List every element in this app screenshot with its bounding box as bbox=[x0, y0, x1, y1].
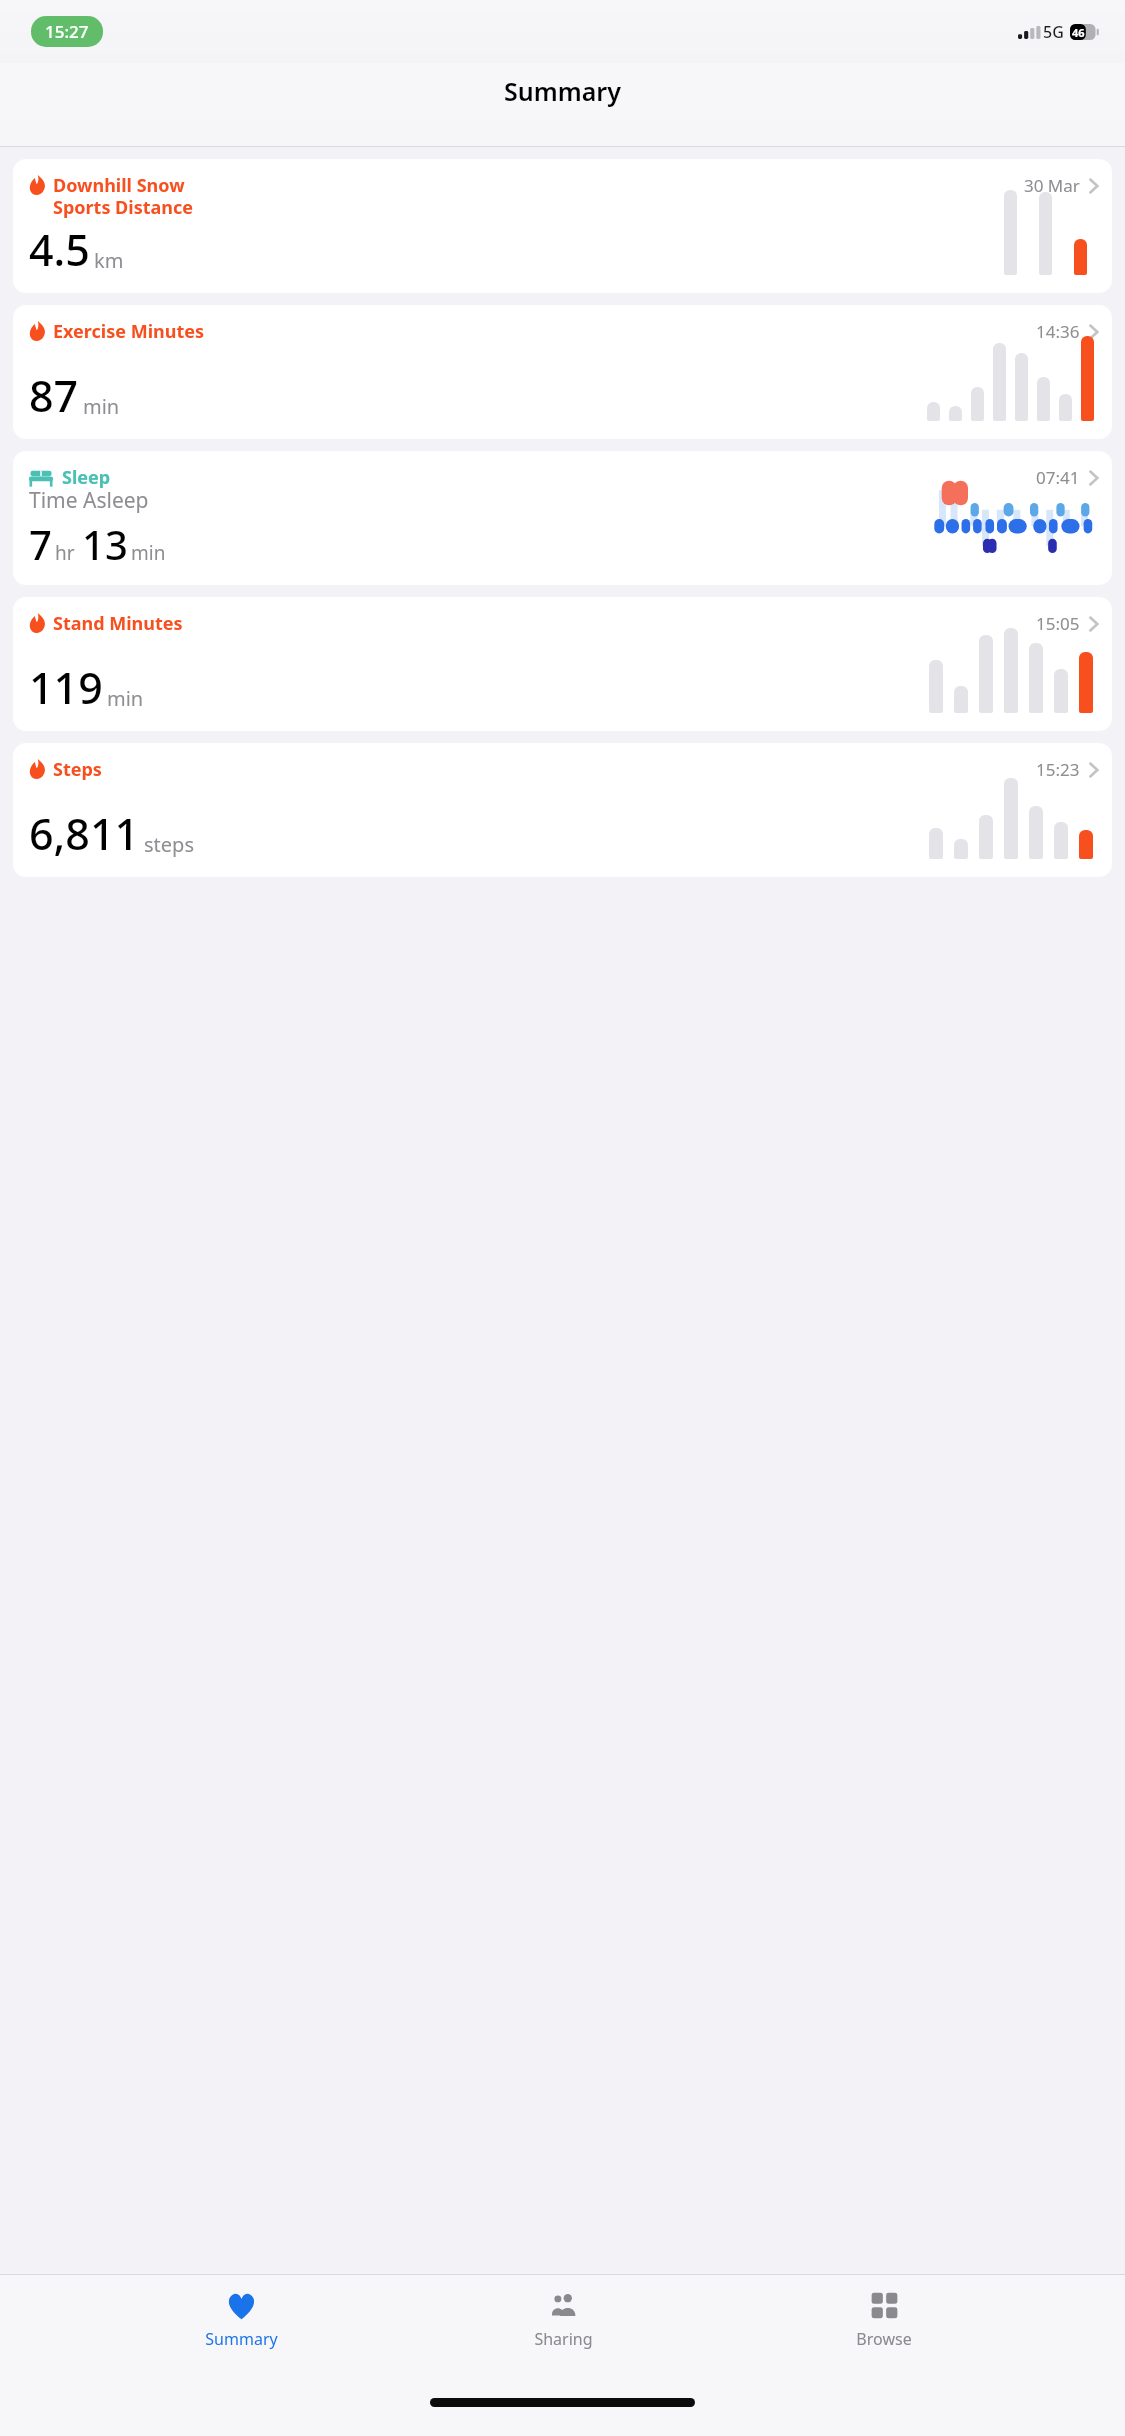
button[interactable]: Stand Minutes bbox=[13, 597, 1112, 731]
staticText: 46 bbox=[1072, 25, 1085, 40]
button[interactable]: Sleep bbox=[13, 451, 1112, 585]
button[interactable]: Summary bbox=[161, 2285, 321, 2354]
staticText: Sleep bbox=[62, 465, 1036, 490]
staticText: 5G bbox=[1043, 21, 1064, 43]
staticText: Stand Minutes bbox=[53, 611, 183, 636]
staticText: 13 bbox=[82, 517, 128, 571]
staticText: 30 Mar bbox=[1024, 174, 1080, 197]
staticText: 6,811 bbox=[29, 804, 140, 863]
staticText: Browse bbox=[856, 2328, 912, 2350]
button[interactable]: Downhill Snow Sports Distance bbox=[13, 159, 1112, 293]
staticText: 15:23 bbox=[1036, 758, 1080, 781]
staticText: hr bbox=[55, 540, 75, 566]
staticText: km bbox=[94, 247, 124, 274]
staticText: 7 bbox=[29, 517, 52, 571]
button[interactable]: Browse bbox=[804, 2285, 964, 2354]
staticText: min bbox=[131, 540, 166, 566]
staticText: Exercise Minutes bbox=[53, 319, 205, 344]
staticText: min bbox=[83, 393, 120, 420]
button[interactable]: Steps bbox=[13, 743, 1112, 877]
staticText: Summary bbox=[504, 74, 621, 108]
staticText: Sharing bbox=[534, 2328, 593, 2350]
staticText: 07:41 bbox=[1036, 466, 1080, 489]
staticText: 119 bbox=[29, 658, 103, 717]
staticText: min bbox=[107, 685, 144, 712]
staticText: 87 bbox=[29, 366, 79, 425]
button[interactable]: Exercise Minutes bbox=[13, 305, 1112, 439]
staticText: 15:27 bbox=[45, 20, 89, 43]
staticText: Summary bbox=[205, 2328, 278, 2350]
staticText: Downhill Snow Sports Distance bbox=[53, 173, 194, 220]
staticText: 4.5 bbox=[29, 220, 90, 279]
staticText: Steps bbox=[53, 757, 102, 782]
staticText: 14:36 bbox=[1036, 320, 1080, 343]
staticText: 15:05 bbox=[1036, 612, 1080, 635]
staticText: Time Asleep bbox=[29, 486, 149, 515]
staticText: steps bbox=[144, 831, 194, 858]
button[interactable]: Sharing bbox=[483, 2285, 643, 2354]
